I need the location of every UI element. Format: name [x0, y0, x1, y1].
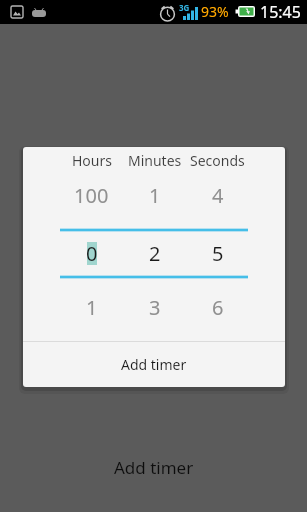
staticText: 93% [201, 2, 229, 21]
button[interactable]: 1 [60, 294, 123, 317]
button[interactable]: 6 [186, 294, 249, 317]
staticText: Minutes [128, 151, 182, 169]
staticText: 5 [212, 240, 224, 263]
button[interactable]: 4 [186, 182, 249, 205]
staticText: 3 [149, 294, 161, 317]
staticText: 4 [212, 182, 224, 205]
button[interactable]: 0 [60, 240, 123, 263]
staticText: 0 [86, 240, 98, 263]
staticText: 1 [149, 182, 161, 205]
staticText: 2 [149, 240, 161, 263]
button[interactable]: 3 [123, 294, 186, 317]
staticText: Seconds [190, 151, 245, 169]
button[interactable]: 100 [60, 182, 123, 205]
staticText: Add timer [121, 355, 187, 374]
staticText: 15:45 [260, 1, 301, 23]
button[interactable]: 5 [186, 240, 249, 263]
staticText: 6 [212, 294, 224, 317]
button[interactable]: 1 [123, 182, 186, 205]
staticText: 100 [74, 182, 109, 205]
staticText: Hours [72, 151, 112, 169]
staticText: 3G [179, 2, 190, 13]
button[interactable]: Add timer [0, 452, 307, 482]
staticText: Add timer [114, 456, 194, 479]
button[interactable]: 2 [123, 240, 186, 263]
staticText: 1 [86, 294, 98, 317]
button[interactable]: Add timer [23, 342, 285, 387]
